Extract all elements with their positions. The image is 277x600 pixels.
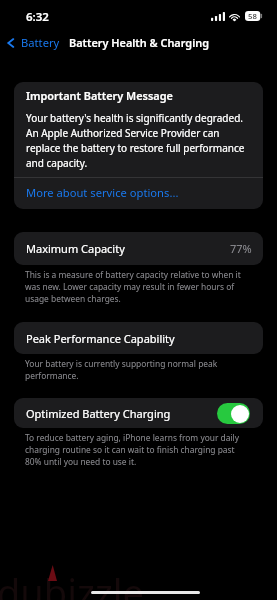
staticText: Your battery is currently supporting nor…	[25, 358, 247, 382]
staticText: Battery	[21, 35, 60, 50]
button[interactable]: Peak Performance Capability	[14, 322, 263, 354]
staticText: To reduce battery aging, iPhone learns f…	[25, 432, 247, 468]
staticText: 77%	[230, 241, 252, 256]
staticText: Your battery's health is significantly d…	[26, 110, 254, 170]
staticText: Optimized Battery Charging	[26, 406, 171, 421]
button[interactable]: Optimized Battery Charging	[14, 398, 263, 428]
other: Back	[5, 36, 16, 50]
button[interactable]: Optimized Battery Charging	[217, 403, 250, 424]
staticText: Peak Performance Capability	[26, 331, 175, 346]
staticText: 58	[248, 11, 257, 21]
button[interactable]: Back	[5, 35, 60, 50]
button[interactable]: Maximum Capacity	[14, 232, 263, 265]
staticText: This is a measure of battery capacity re…	[25, 269, 247, 305]
staticText: dubizzle	[0, 566, 144, 600]
staticText: More about service options...	[26, 185, 179, 200]
staticText: Maximum Capacity	[26, 241, 125, 256]
staticText: 6:32	[26, 9, 49, 25]
button[interactable]: More about service options...	[14, 178, 263, 209]
staticText: Important Battery Message	[26, 90, 173, 103]
staticText: Battery Health & Charging	[69, 35, 210, 50]
